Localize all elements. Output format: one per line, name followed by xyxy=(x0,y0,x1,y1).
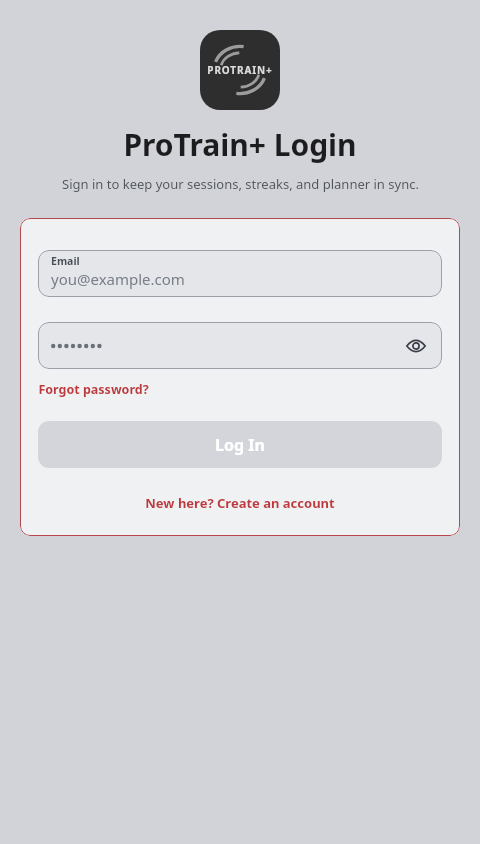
staticText: Email xyxy=(51,254,80,268)
button[interactable]: Show password xyxy=(38,322,442,369)
staticText: ProTrain+ Login xyxy=(123,124,357,165)
staticText: you@example.com xyxy=(51,269,185,289)
staticText: Log In xyxy=(215,434,265,456)
button[interactable]: Show password xyxy=(403,333,429,359)
button[interactable]: New here? Create an account xyxy=(38,494,442,512)
staticText: New here? Create an account xyxy=(145,494,335,512)
staticText: Sign in to keep your sessions, streaks, … xyxy=(62,175,419,193)
button[interactable]: Email xyxy=(38,250,442,297)
button[interactable]: Log In xyxy=(38,421,442,468)
button[interactable]: Forgot password? xyxy=(38,379,149,400)
staticText: Forgot password? xyxy=(38,381,149,398)
staticText: PROTRAIN+ xyxy=(207,63,273,77)
